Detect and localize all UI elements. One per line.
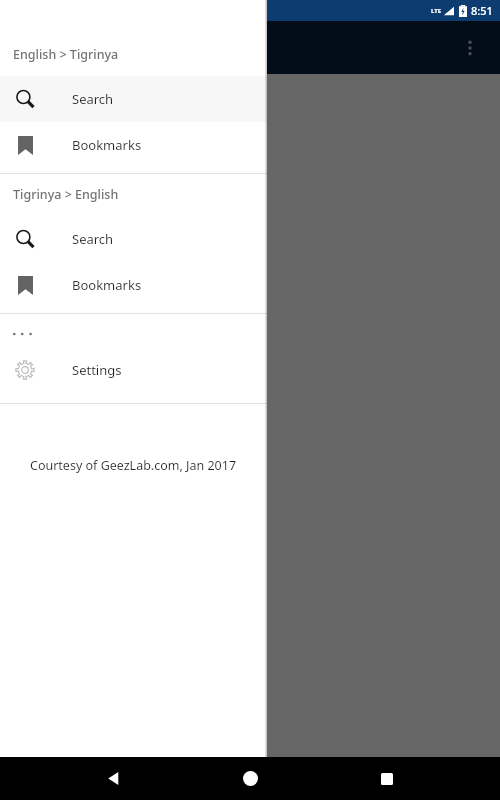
staticText: English > Tigrinya [13, 46, 119, 63]
button[interactable]: Back [89, 757, 137, 800]
staticText: Search [72, 90, 114, 108]
button[interactable]: Home [226, 757, 274, 800]
staticText: Courtesy of GeezLab.com, Jan 2017 [30, 457, 237, 474]
staticText: Bookmarks [72, 136, 142, 154]
button[interactable]: Settings [0, 347, 267, 393]
staticText: LTE [431, 7, 442, 15]
button[interactable]: Home [226, 757, 274, 800]
button[interactable]: More options [450, 28, 490, 68]
staticText: 8:51 [471, 3, 493, 18]
button[interactable]: Recent apps [363, 757, 411, 800]
button[interactable]: Bookmarks [0, 122, 267, 168]
staticText: LTE [431, 7, 442, 15]
staticText: Tigrinya > English [13, 186, 119, 203]
button[interactable]: IMPROVE ENTRY [16, 126, 126, 144]
button[interactable]: Search [0, 76, 267, 122]
button[interactable]: Bookmarks [0, 262, 267, 308]
staticText: IMPROVE ENTRY [16, 126, 126, 144]
staticText: 8:51 [471, 3, 493, 18]
button[interactable] [0, 21, 500, 757]
button[interactable]: Search [0, 216, 267, 262]
button[interactable]: Recent apps [363, 757, 411, 800]
staticText: Bookmarks [72, 276, 142, 294]
staticText: Search [72, 230, 114, 248]
staticText: Settings [72, 361, 122, 379]
button[interactable]: Back [89, 757, 137, 800]
